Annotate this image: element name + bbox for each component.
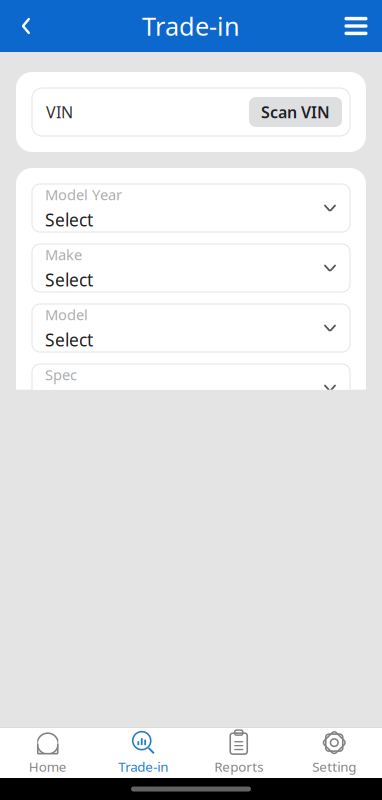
button[interactable]: Setting bbox=[286, 728, 382, 778]
button[interactable]: Make bbox=[32, 244, 350, 292]
staticText: Select bbox=[45, 328, 93, 351]
staticText: Setting bbox=[312, 758, 356, 775]
button[interactable]: Model bbox=[32, 304, 350, 352]
staticText: Home bbox=[29, 758, 67, 775]
staticText: Select bbox=[45, 268, 93, 291]
staticText: Scan VIN bbox=[261, 101, 330, 123]
button[interactable]: Model Year bbox=[32, 184, 350, 232]
staticText: Model bbox=[45, 305, 88, 324]
button[interactable]: Home bbox=[0, 728, 95, 778]
button[interactable]: Spec bbox=[32, 364, 350, 412]
staticText: Model Year bbox=[45, 185, 122, 204]
staticText: Make bbox=[45, 245, 82, 264]
staticText: VIN bbox=[46, 101, 73, 123]
staticText: Spec bbox=[45, 365, 77, 384]
button[interactable]: Menu bbox=[330, 0, 382, 52]
staticText: Trade-in bbox=[118, 758, 168, 775]
button[interactable]: Trade-in bbox=[95, 728, 191, 778]
staticText: Select bbox=[45, 208, 93, 231]
button[interactable]: Scan VIN bbox=[249, 97, 342, 127]
staticText: Reports bbox=[214, 758, 263, 775]
staticText: Select bbox=[45, 388, 93, 411]
button[interactable]: Reports bbox=[191, 728, 286, 778]
button[interactable]: Add exterior photo bbox=[196, 652, 350, 742]
button[interactable]: Back bbox=[0, 0, 52, 52]
button[interactable]: Add exterior photo bbox=[32, 652, 186, 742]
staticText: Trade-in bbox=[142, 9, 240, 43]
